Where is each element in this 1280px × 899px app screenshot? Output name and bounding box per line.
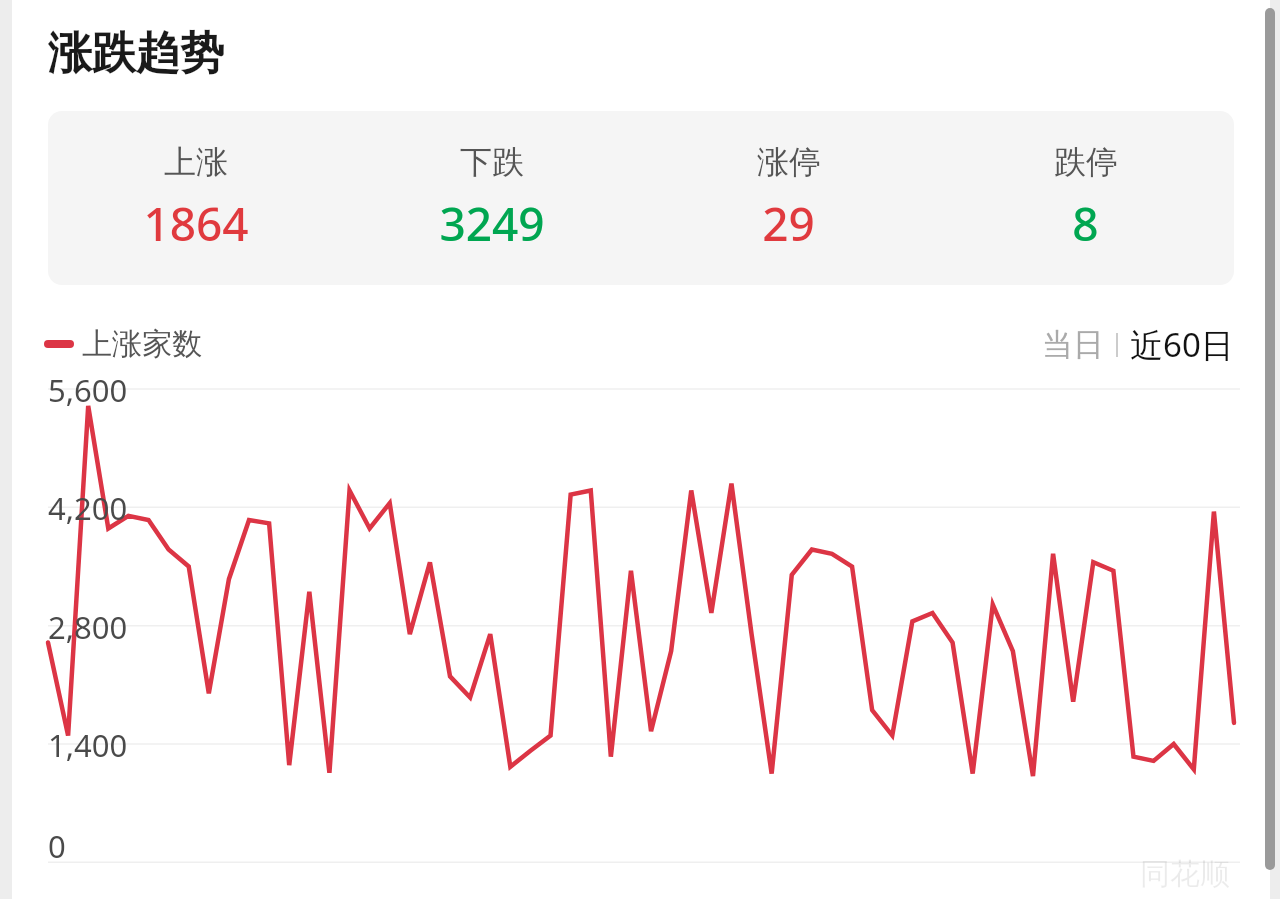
staticText: 29 [762, 192, 815, 255]
button[interactable]: 近60日 [1130, 322, 1234, 367]
button[interactable]: 下跌 [344, 111, 640, 285]
button[interactable]: 上涨 [48, 111, 1234, 285]
staticText: 3249 [439, 192, 545, 255]
button[interactable]: 涨停 [640, 111, 937, 285]
other: 上涨家数近60日走势图 [12, 379, 1270, 899]
staticText: 当日 [1042, 325, 1104, 364]
staticText: 0 [48, 825, 66, 867]
staticText: 上涨家数 [82, 325, 202, 363]
staticText: 上涨 [164, 142, 228, 182]
staticText: 同花顺 [1140, 855, 1230, 893]
button[interactable]: 上涨 [48, 111, 344, 285]
staticText: 4,200 [48, 487, 128, 529]
staticText: 跌停 [1054, 142, 1118, 182]
staticText: 1864 [143, 192, 249, 255]
button[interactable]: 跌停 [937, 111, 1234, 285]
staticText: 8 [1072, 192, 1099, 255]
staticText: 1,400 [48, 724, 128, 766]
staticText: 涨跌趋势 [48, 26, 224, 81]
staticText: 下跌 [460, 142, 524, 182]
staticText: 近60日 [1130, 322, 1234, 367]
staticText: 2,800 [48, 606, 128, 648]
button[interactable]: 上涨家数 [48, 325, 202, 363]
staticText: 5,600 [48, 369, 128, 411]
staticText: 涨停 [757, 142, 821, 182]
button[interactable]: 当日 [1042, 325, 1104, 364]
